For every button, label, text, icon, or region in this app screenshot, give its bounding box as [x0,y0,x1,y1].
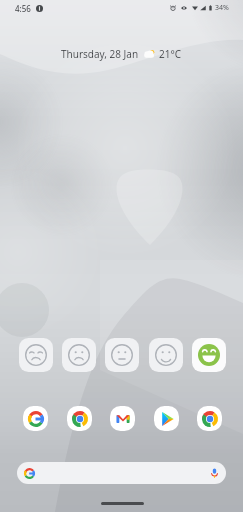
button[interactable]: Sad [62,338,96,372]
button[interactable]: Very happy [192,338,226,372]
staticText: 34% [215,3,229,13]
staticText: 21°C [159,47,182,61]
button[interactable]: Neutral [105,338,139,372]
button[interactable]: Happy [149,338,183,372]
button[interactable]: Search Google [17,462,226,484]
button[interactable]: Play Store [150,402,182,434]
staticText: 4:56 [15,3,31,14]
button[interactable]: Chrome [193,402,225,434]
staticText: Thursday, 28 Jan [61,47,139,61]
button[interactable]: Very sad [19,338,53,372]
button[interactable]: Gmail [106,402,138,434]
button[interactable]: Chrome [63,402,95,434]
button[interactable]: Google [19,402,51,434]
button[interactable]: Thursday, 28 Jan [0,47,243,61]
